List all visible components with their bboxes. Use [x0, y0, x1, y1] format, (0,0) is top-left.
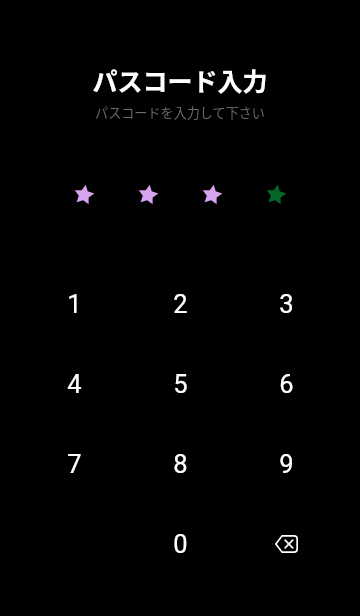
- staticText: 6: [279, 369, 294, 399]
- staticText: 1: [67, 289, 82, 319]
- button[interactable]: 0: [127, 501, 233, 581]
- staticText: 4: [67, 369, 82, 399]
- button[interactable]: 9: [233, 421, 339, 501]
- staticText: 5: [173, 369, 188, 399]
- button[interactable]: 8: [127, 421, 233, 501]
- staticText: 0: [173, 529, 188, 559]
- staticText: 8: [173, 449, 188, 479]
- staticText: 2: [173, 289, 188, 319]
- staticText: 9: [279, 449, 294, 479]
- button[interactable]: 7: [21, 421, 127, 501]
- button[interactable]: 4: [21, 341, 127, 421]
- button[interactable]: 3: [233, 261, 339, 341]
- button[interactable]: 6: [233, 341, 339, 421]
- button[interactable]: 2: [127, 261, 233, 341]
- staticText: 3: [279, 289, 294, 319]
- staticText: パスコード入力: [92, 62, 268, 98]
- button[interactable]: 5: [127, 341, 233, 421]
- button[interactable]: Delete: [233, 501, 339, 581]
- button[interactable]: 1: [21, 261, 127, 341]
- staticText: 7: [67, 449, 82, 479]
- staticText: パスコードを入力して下さい: [95, 103, 265, 122]
